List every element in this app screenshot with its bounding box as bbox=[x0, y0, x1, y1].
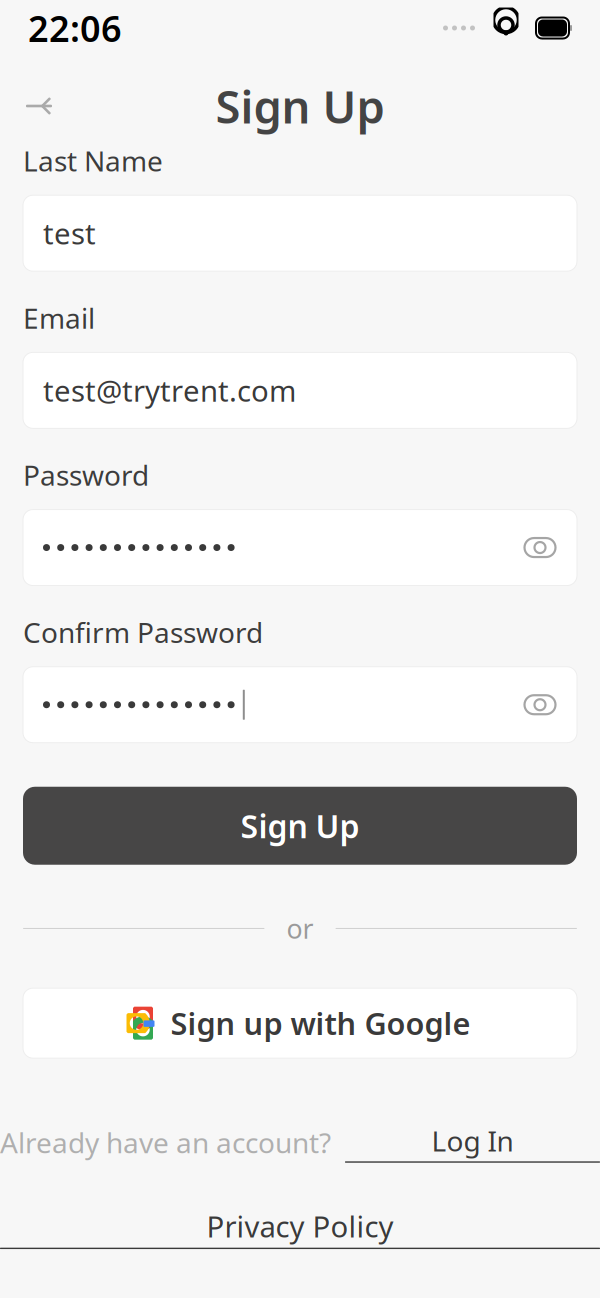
staticText: test bbox=[43, 214, 96, 253]
button[interactable]: Sign up with Google bbox=[23, 988, 577, 1058]
staticText: Already have an account? bbox=[0, 1124, 331, 1161]
staticText: Log In bbox=[431, 1122, 513, 1159]
staticText: Email bbox=[23, 299, 95, 336]
staticText: Privacy Policy bbox=[206, 1207, 393, 1246]
button[interactable]: Show password bbox=[513, 536, 557, 558]
staticText: Password bbox=[23, 456, 149, 494]
staticText: test@trytrent.com bbox=[43, 371, 296, 410]
button[interactable]: Show confirm password bbox=[513, 694, 557, 716]
staticText: Sign Up bbox=[240, 804, 359, 847]
staticText: Sign Up bbox=[215, 76, 384, 136]
staticText: Confirm Password bbox=[23, 613, 263, 651]
staticText: Last Name bbox=[23, 142, 163, 179]
button[interactable]: Sign Up bbox=[23, 787, 577, 865]
button[interactable]: Back bbox=[14, 82, 64, 130]
button[interactable]: Privacy Policy bbox=[0, 1207, 600, 1249]
staticText: or bbox=[286, 911, 313, 946]
staticText: Sign up with Google bbox=[170, 1003, 470, 1043]
button[interactable]: Log In bbox=[331, 1122, 600, 1163]
staticText: 22:06 bbox=[28, 4, 122, 52]
